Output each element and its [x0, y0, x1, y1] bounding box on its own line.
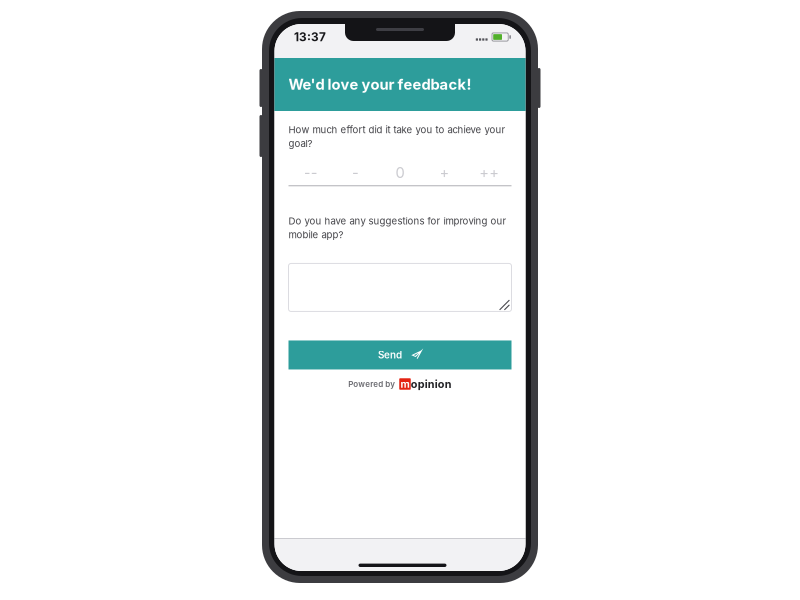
button[interactable]: - [333, 164, 378, 181]
staticText: + [440, 164, 450, 182]
staticText: -- [304, 164, 318, 182]
staticText: Send [378, 349, 402, 361]
staticText: We'd love your feedback! [288, 76, 471, 93]
staticText: Do you have any suggestions for improvin… [288, 215, 506, 240]
button[interactable]: Powered by [348, 377, 452, 391]
button[interactable]: Send [288, 340, 511, 369]
button[interactable] [288, 263, 511, 311]
button[interactable]: -- [288, 164, 333, 181]
staticText: How much effort did it take you to achie… [288, 124, 505, 149]
staticText: opinion [411, 377, 452, 391]
staticText: ++ [479, 164, 499, 182]
button[interactable]: 0 [378, 164, 422, 181]
button[interactable]: ++ [467, 164, 511, 181]
staticText: Powered by [348, 379, 395, 389]
staticText: 13:37 [294, 30, 326, 44]
button[interactable]: + [422, 164, 467, 181]
staticText: - [352, 164, 359, 182]
staticText: 0 [395, 164, 404, 182]
staticText: m [400, 378, 409, 390]
